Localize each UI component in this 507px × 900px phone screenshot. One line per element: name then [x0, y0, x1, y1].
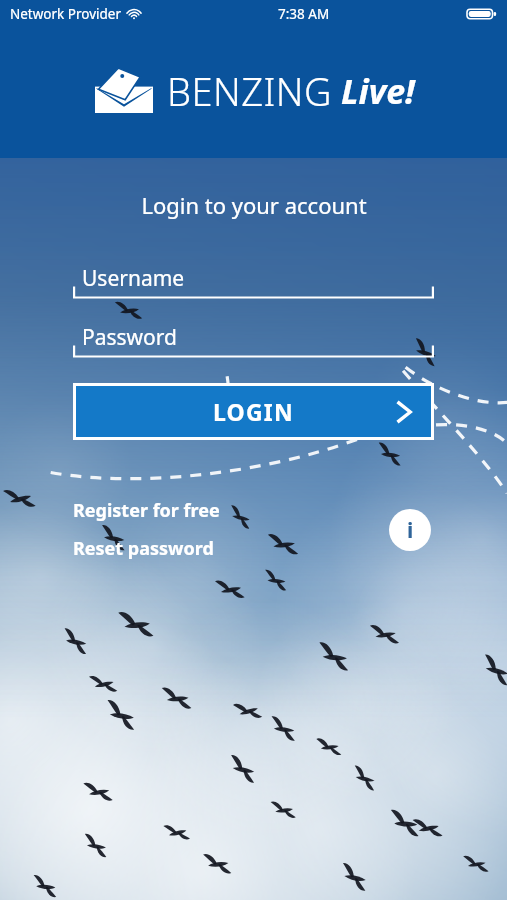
staticText: i — [407, 516, 414, 545]
staticText: BENZING — [167, 65, 333, 117]
button[interactable]: Reset password — [73, 536, 214, 561]
staticText: Register for free — [73, 498, 220, 523]
button[interactable]: Username — [73, 261, 434, 299]
staticText: 7:38 AM — [278, 5, 330, 23]
button[interactable]: Password — [73, 320, 434, 358]
staticText: Password — [82, 323, 177, 352]
button[interactable]: LOGIN — [76, 386, 431, 437]
button[interactable]: Register for free — [73, 498, 220, 523]
staticText: Live! — [341, 68, 415, 114]
staticText: Network Provider — [10, 5, 122, 23]
staticText: Reset password — [73, 536, 214, 561]
staticText: Login to your account — [141, 190, 367, 220]
staticText: LOGIN — [213, 396, 294, 427]
staticText: Username — [82, 264, 185, 293]
button[interactable]: Information — [389, 509, 431, 551]
